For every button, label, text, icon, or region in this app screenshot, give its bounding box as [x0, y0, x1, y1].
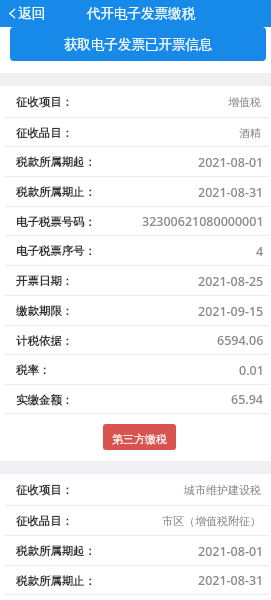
staticText: 第三方缴税 [112, 432, 167, 446]
staticText: 税款所属期止： [16, 574, 96, 588]
staticText: 征收项目： [16, 483, 73, 497]
button[interactable]: 征收项目： [0, 474, 271, 506]
staticText: 电子税票序号： [16, 244, 96, 258]
staticText: 32300621080000001 [142, 213, 264, 230]
button[interactable]: 第三方缴税 [103, 424, 176, 450]
button[interactable]: 税款所属期止： [0, 566, 271, 595]
button[interactable]: 电子税票号码： [0, 207, 271, 236]
staticText: 实缴金额： [16, 393, 73, 407]
button[interactable]: 缴款期限： [0, 296, 271, 326]
staticText: 返回 [18, 5, 46, 22]
staticText: 税率： [16, 363, 51, 377]
staticText: 6594.06 [217, 332, 264, 349]
staticText: 65.94 [231, 391, 264, 408]
staticText: 2021-08-31 [198, 572, 264, 589]
staticText: 税款所属期止： [16, 185, 96, 199]
button[interactable]: 征收品目： [0, 506, 271, 536]
staticText: 税款所属期起： [16, 544, 96, 558]
button[interactable]: 开票日期： [0, 266, 271, 296]
staticText: 2021-08-31 [198, 184, 264, 201]
button[interactable]: 税率： [0, 355, 271, 385]
staticText: 开票日期： [16, 274, 73, 288]
staticText: 税款所属期起： [16, 155, 96, 169]
staticText: 2021-09-15 [198, 303, 264, 320]
button[interactable]: 获取电子发票已开票信息 [10, 27, 266, 61]
staticText: 征收项目： [16, 95, 73, 109]
button[interactable]: 征收品目： [0, 118, 271, 147]
button[interactable]: 税款所属期起： [0, 536, 271, 566]
button[interactable]: 税款所属期止： [0, 177, 271, 207]
staticText: 缴款期限： [16, 304, 73, 318]
button[interactable]: 电子税票序号： [0, 236, 271, 266]
button[interactable]: 返回 [0, 1, 54, 26]
button[interactable]: 实缴金额： [0, 385, 271, 414]
staticText: 2021-08-25 [198, 273, 264, 290]
staticText: 市区（增值税附征） [162, 514, 261, 528]
staticText: 4 [256, 243, 264, 260]
staticText: 代开电子发票缴税 [87, 5, 195, 22]
staticText: 电子税票号码： [16, 215, 96, 229]
staticText: 0.01 [239, 362, 264, 379]
staticText: 计税依据： [16, 334, 73, 348]
staticText: 征收品目： [16, 514, 73, 528]
staticText: 增值税 [228, 95, 261, 109]
button[interactable]: 征收项目： [0, 86, 271, 118]
staticText: 2021-08-01 [198, 543, 264, 560]
button[interactable]: 计税依据： [0, 326, 271, 355]
staticText: 征收品目： [16, 126, 73, 140]
staticText: 2021-08-01 [198, 154, 264, 171]
staticText: 获取电子发票已开票信息 [64, 36, 213, 53]
staticText: 酒精 [239, 126, 261, 140]
button[interactable]: 税款所属期起： [0, 147, 271, 177]
staticText: 城市维护建设税 [184, 483, 261, 497]
